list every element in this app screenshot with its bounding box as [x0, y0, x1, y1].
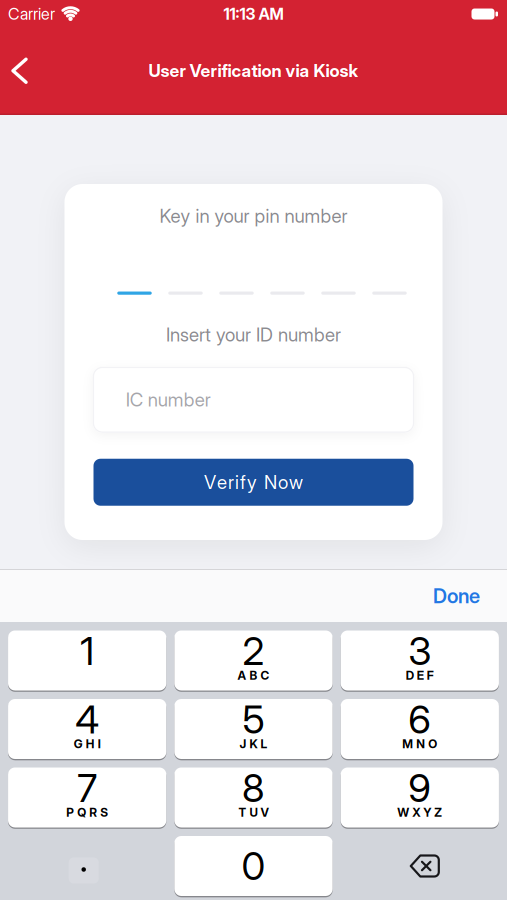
staticText: 3 [408, 628, 431, 674]
staticText: IC number [126, 389, 211, 411]
button[interactable]: 8 [174, 767, 333, 827]
staticText: Carrier [8, 5, 55, 23]
button[interactable]: Done [433, 584, 507, 608]
button[interactable]: 2 [174, 630, 333, 690]
button[interactable]: 4 [8, 699, 166, 759]
button[interactable]: Back [0, 49, 40, 92]
button[interactable]: 7 [8, 767, 166, 827]
staticText: M N O [402, 737, 437, 751]
button[interactable]: 6 [341, 699, 499, 759]
button[interactable]: Decimal point [8, 836, 166, 896]
staticText: G H I [74, 737, 101, 751]
staticText: 7 [77, 765, 97, 811]
staticText: User Verification via Kiosk [148, 60, 358, 81]
button[interactable]: 3 [341, 630, 499, 690]
button[interactable]: 1 [8, 630, 166, 690]
staticText: T U V [238, 805, 268, 820]
staticText: J K L [239, 737, 267, 751]
staticText: Done [433, 584, 480, 608]
button[interactable]: 9 [341, 767, 499, 827]
staticText: 8 [242, 765, 265, 811]
staticText: 11:13 AM [223, 5, 283, 23]
staticText: D E F [406, 668, 434, 683]
staticText: 4 [75, 697, 99, 742]
button[interactable]: Delete [341, 836, 499, 896]
staticText: W X Y Z [397, 805, 442, 820]
staticText: 6 [408, 697, 431, 742]
button[interactable]: IC number [93, 367, 414, 433]
staticText: Insert your ID number [166, 324, 341, 346]
staticText: V e r i f y N o w [204, 471, 303, 493]
staticText: 9 [408, 765, 431, 811]
staticText: 1 [80, 628, 94, 674]
staticText: 0 [241, 843, 265, 889]
button[interactable]: 0 [174, 836, 333, 896]
button[interactable]: 5 [174, 699, 333, 759]
staticText: 5 [242, 697, 264, 742]
staticText: 2 [242, 628, 264, 674]
button[interactable]: V e r i f y N o w [93, 459, 413, 506]
staticText: P Q R S [66, 805, 108, 820]
staticText: Key in your pin number [159, 205, 347, 227]
staticText: A B C [237, 668, 269, 683]
